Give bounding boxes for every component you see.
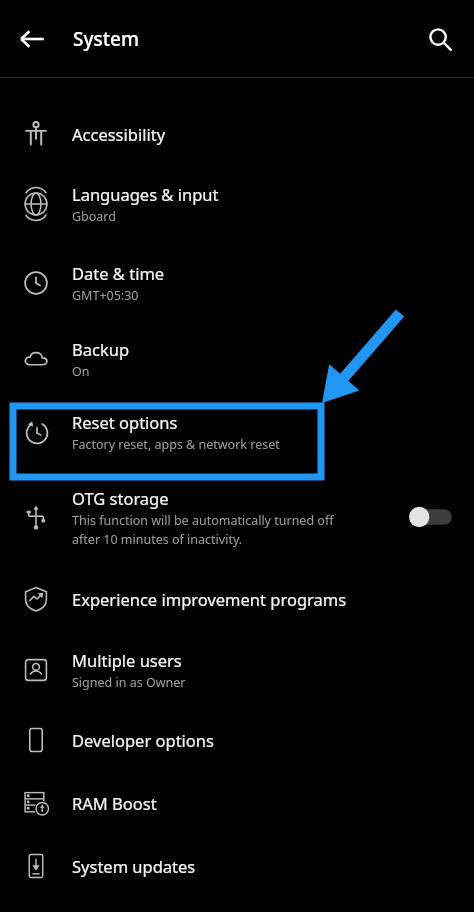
button[interactable]: OTG storage bbox=[0, 468, 474, 566]
button[interactable]: Reset options bbox=[0, 396, 474, 468]
button[interactable]: Accessibility bbox=[0, 102, 474, 165]
button[interactable]: Experience improvement programs bbox=[0, 566, 474, 632]
staticText: Reset options bbox=[72, 411, 178, 433]
button[interactable]: System updates bbox=[0, 834, 474, 897]
staticText: On bbox=[72, 363, 90, 380]
staticText: Accessibility bbox=[72, 123, 166, 145]
staticText: System bbox=[73, 26, 139, 52]
button[interactable]: Multiple users bbox=[0, 632, 474, 708]
staticText: Multiple users bbox=[72, 649, 182, 671]
staticText: Signed in as Owner bbox=[72, 674, 186, 691]
button[interactable]: Backup bbox=[0, 322, 474, 396]
staticText: Date & time bbox=[72, 262, 165, 284]
staticText: Backup bbox=[72, 338, 130, 360]
button[interactable]: Date & time bbox=[0, 243, 474, 322]
staticText: Developer options bbox=[72, 729, 214, 751]
staticText: Gboard bbox=[72, 208, 116, 225]
staticText: RAM Boost bbox=[72, 792, 157, 814]
staticText: Factory reset, apps & network reset bbox=[72, 436, 280, 453]
button[interactable]: Search bbox=[416, 15, 464, 63]
button[interactable]: RAM Boost bbox=[0, 771, 474, 834]
button[interactable]: Developer options bbox=[0, 708, 474, 771]
staticText: OTG storage bbox=[72, 487, 169, 509]
staticText: This function will be automatically turn… bbox=[72, 512, 334, 548]
button[interactable]: Back bbox=[8, 15, 56, 63]
staticText: System updates bbox=[72, 855, 196, 877]
staticText: GMT+05:30 bbox=[72, 287, 139, 304]
staticText: Languages & input bbox=[72, 183, 219, 205]
staticText: Experience improvement programs bbox=[72, 588, 347, 610]
button[interactable]: OTG storage toggle bbox=[412, 502, 452, 532]
button[interactable]: Languages & input bbox=[0, 165, 474, 243]
